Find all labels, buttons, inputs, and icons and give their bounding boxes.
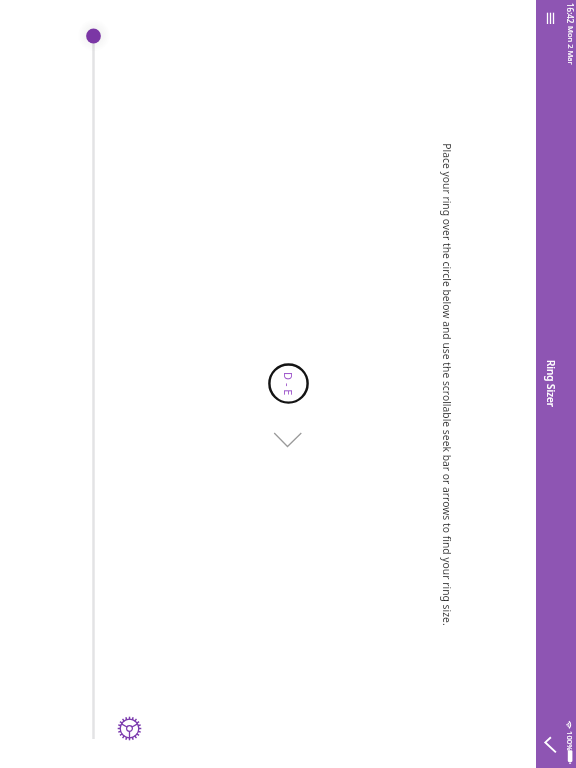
staticText: Ring Sizer [544, 360, 558, 408]
button[interactable]: Back [536, 728, 566, 758]
staticText: 100% [565, 731, 575, 751]
staticText: D - E [281, 372, 296, 396]
button[interactable]: Ring size seek bar [72, 0, 114, 768]
button[interactable]: Settings [115, 714, 144, 743]
staticText: Mon 2 Mar [566, 26, 576, 65]
staticText: 16:42 [565, 3, 576, 24]
button[interactable]: Next ring size [266, 427, 310, 457]
staticText: Place your ring over the circle below an… [440, 143, 454, 626]
button[interactable]: Open navigation menu [538, 6, 563, 31]
